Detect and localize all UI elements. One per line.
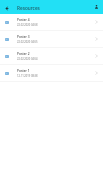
staticText: Resources <box>17 5 40 11</box>
button[interactable]: Poster 4 <box>0 14 103 30</box>
button[interactable]: Poster 1 <box>0 65 103 81</box>
staticText: Poster 4 <box>17 18 30 22</box>
staticText: 22.02.2020 04:55 <box>17 40 38 44</box>
button[interactable]: Poster 2 <box>0 48 103 64</box>
button[interactable]: Back <box>0 0 14 14</box>
staticText: Poster 2 <box>17 52 30 56</box>
button[interactable]: Poster 3 <box>0 31 103 47</box>
staticText: Poster 1 <box>17 69 30 73</box>
staticText: 22.02.2020 04:54 <box>17 57 38 61</box>
staticText: 22.02.2020 04:58 <box>17 23 38 27</box>
staticText: 12.11.2019 08:38 <box>17 74 38 78</box>
button[interactable]: Account <box>90 0 103 14</box>
staticText: Poster 3 <box>17 35 30 39</box>
